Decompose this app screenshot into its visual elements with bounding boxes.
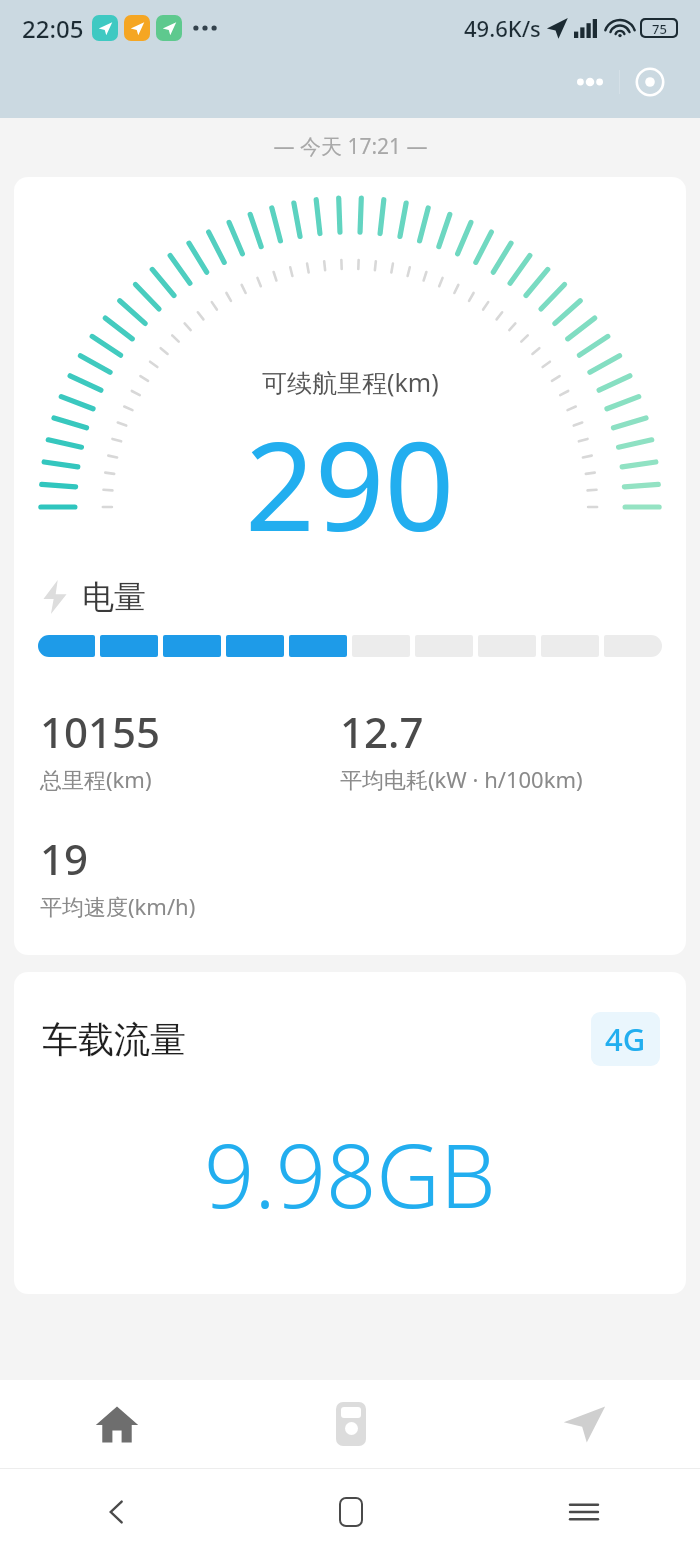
button[interactable]: Home [234,1469,467,1555]
staticText: 12.7 [340,703,424,760]
staticText: 290 [245,401,455,567]
button[interactable]: Menu [467,1469,700,1555]
staticText: 4G [605,1018,646,1060]
staticText: 49.6K/s [464,13,541,43]
button[interactable]: Home [0,1380,234,1468]
staticText: 电量 [82,577,146,617]
button[interactable]: Back [0,1469,234,1555]
button[interactable]: 车载流量 [14,972,686,1294]
staticText: — 今天 17:21 — [273,132,428,161]
staticText: 75 [652,20,667,36]
staticText: 9.98GB [204,1114,496,1234]
button[interactable]: Close [620,67,680,97]
button[interactable]: 可续航里程(km) [14,177,686,955]
staticText: 19 [40,830,89,887]
staticText: 可续航里程(km) [262,365,439,399]
staticText: 10155 [40,703,161,760]
staticText: 平均速度(km/h) [40,891,196,921]
staticText: 平均电耗(kW · h/100km) [340,764,583,794]
button[interactable]: Car key [234,1380,467,1468]
staticText: 22:05 [22,12,84,45]
staticText: 总里程(km) [40,764,152,794]
button[interactable]: More [560,76,619,88]
button[interactable]: Navigation [467,1380,700,1468]
staticText: 车载流量 [42,1017,186,1062]
